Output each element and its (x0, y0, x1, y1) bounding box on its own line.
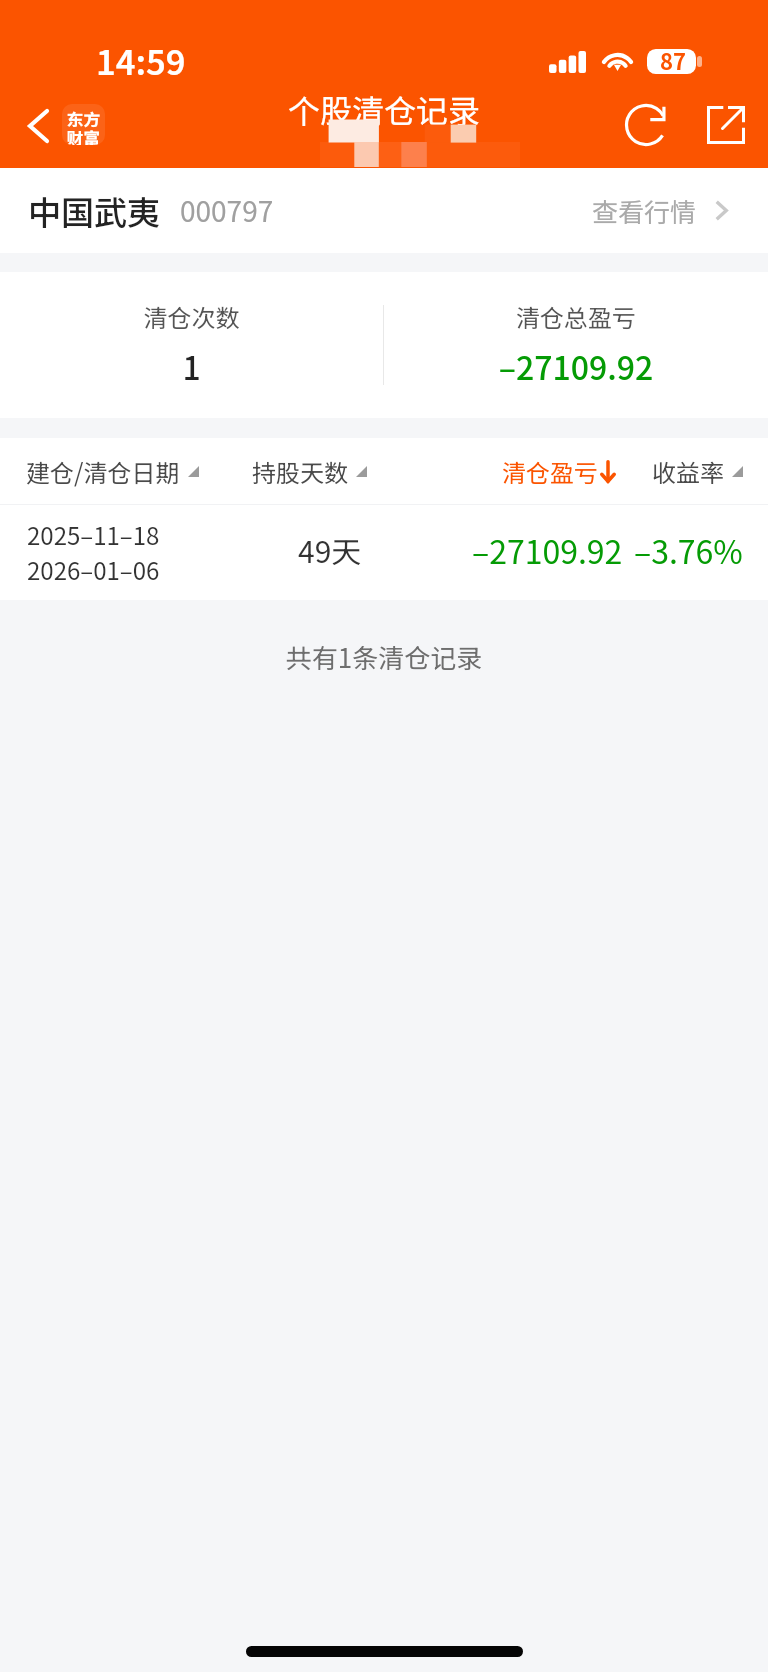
staticText: –3.76% (634, 527, 743, 573)
button[interactable]: 清仓次数 (0, 272, 383, 418)
staticText: 个股清仓记录 (288, 86, 481, 132)
staticText: 2025–11–18 (27, 517, 160, 552)
button[interactable]: Share (682, 81, 768, 169)
staticText: –27109.92 (384, 343, 768, 389)
staticText: 1 (0, 343, 383, 389)
staticText: 中国武夷 (28, 187, 160, 235)
staticText: 财富 (62, 126, 105, 145)
staticText: 14:59 (96, 36, 186, 85)
button[interactable]: Back (15, 94, 61, 158)
button[interactable]: 清仓盈亏 (439, 438, 679, 504)
button[interactable]: East Money (62, 104, 105, 145)
button[interactable]: 建仓/清仓日期 (0, 438, 232, 504)
staticText: 清仓次数 (0, 299, 383, 334)
staticText: 49天 (298, 528, 362, 571)
button[interactable]: 清仓总盈亏 (384, 272, 768, 418)
staticText: 持股天数 (252, 454, 348, 489)
staticText: –27109.92 (472, 527, 623, 573)
button[interactable]: 持股天数 (189, 438, 429, 504)
staticText: 建仓/清仓日期 (26, 454, 180, 489)
staticText: 87 (647, 44, 699, 76)
staticText: 000797 (180, 190, 274, 231)
button[interactable]: 2025–11–18 (0, 505, 768, 600)
staticText: 收益率 (652, 454, 724, 489)
staticText: 2026–01–06 (27, 552, 160, 587)
staticText: 清仓总盈亏 (384, 299, 768, 334)
staticText: 清仓盈亏 (502, 454, 598, 489)
staticText: 共有1条清仓记录 (0, 638, 768, 676)
staticText: 东方 (62, 107, 105, 131)
staticText: 查看行情 (592, 192, 697, 230)
button[interactable]: Refresh (602, 81, 690, 169)
button[interactable]: 收益率 (577, 438, 768, 504)
button[interactable]: 中国武夷 (0, 168, 768, 253)
